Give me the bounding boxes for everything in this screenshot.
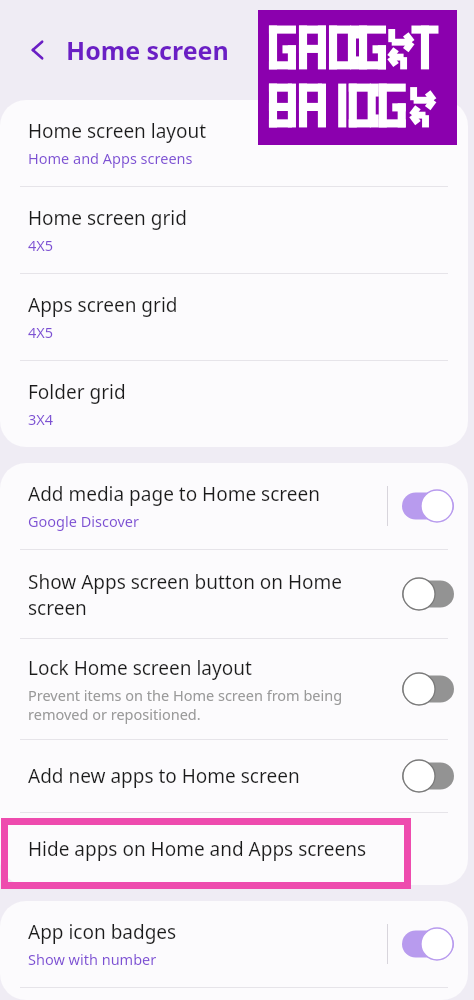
button[interactable]: App icon badges bbox=[402, 927, 454, 961]
staticText: Home and Apps screens bbox=[28, 148, 193, 168]
button[interactable]: Show Apps screen button on Home screen bbox=[0, 550, 468, 638]
button[interactable]: Apps screen grid bbox=[0, 274, 468, 360]
button[interactable]: Lock Home screen layout bbox=[402, 672, 454, 706]
other: Gadget Bridge logo bbox=[258, 10, 457, 145]
staticText: Home screen layout bbox=[28, 118, 207, 144]
button[interactable]: Home screen grid bbox=[0, 187, 468, 273]
staticText: App icon badges bbox=[28, 919, 177, 945]
staticText: Add new apps to Home screen bbox=[28, 763, 300, 789]
button[interactable]: Folder grid bbox=[0, 361, 468, 447]
staticText: Lock Home screen layout bbox=[28, 655, 252, 681]
button[interactable]: Add new apps to Home screen bbox=[402, 759, 454, 793]
staticText: 4X5 bbox=[28, 322, 54, 342]
staticText: Show Apps screen button on Home screen bbox=[28, 569, 387, 620]
staticText: Home screen bbox=[66, 33, 229, 67]
staticText: 4X5 bbox=[28, 235, 54, 255]
staticText: Prevent items on the Home screen from be… bbox=[28, 685, 387, 724]
staticText: Hide apps on Home and Apps screens bbox=[28, 836, 367, 862]
button[interactable]: Add media page to Home screen bbox=[0, 463, 468, 549]
staticText: Show with number bbox=[28, 949, 157, 969]
staticText: Folder grid bbox=[28, 379, 126, 405]
button[interactable]: Add media page to Home screen bbox=[402, 489, 454, 523]
button[interactable]: Home screen layout bbox=[0, 100, 468, 186]
staticText: Add media page to Home screen bbox=[28, 481, 320, 507]
button[interactable]: Add new apps to Home screen bbox=[0, 740, 468, 812]
staticText: 3X4 bbox=[28, 409, 54, 429]
button[interactable]: Lock Home screen layout bbox=[0, 639, 468, 739]
button[interactable]: Show Apps screen button on Home screen bbox=[402, 577, 454, 611]
button[interactable]: App icon badges bbox=[0, 901, 468, 987]
button[interactable]: Hide apps on Home and Apps screens bbox=[0, 813, 468, 885]
staticText: Apps screen grid bbox=[28, 292, 178, 318]
staticText: Google Discover bbox=[28, 511, 139, 531]
button[interactable]: Back bbox=[14, 26, 62, 74]
staticText: Home screen grid bbox=[28, 205, 187, 231]
